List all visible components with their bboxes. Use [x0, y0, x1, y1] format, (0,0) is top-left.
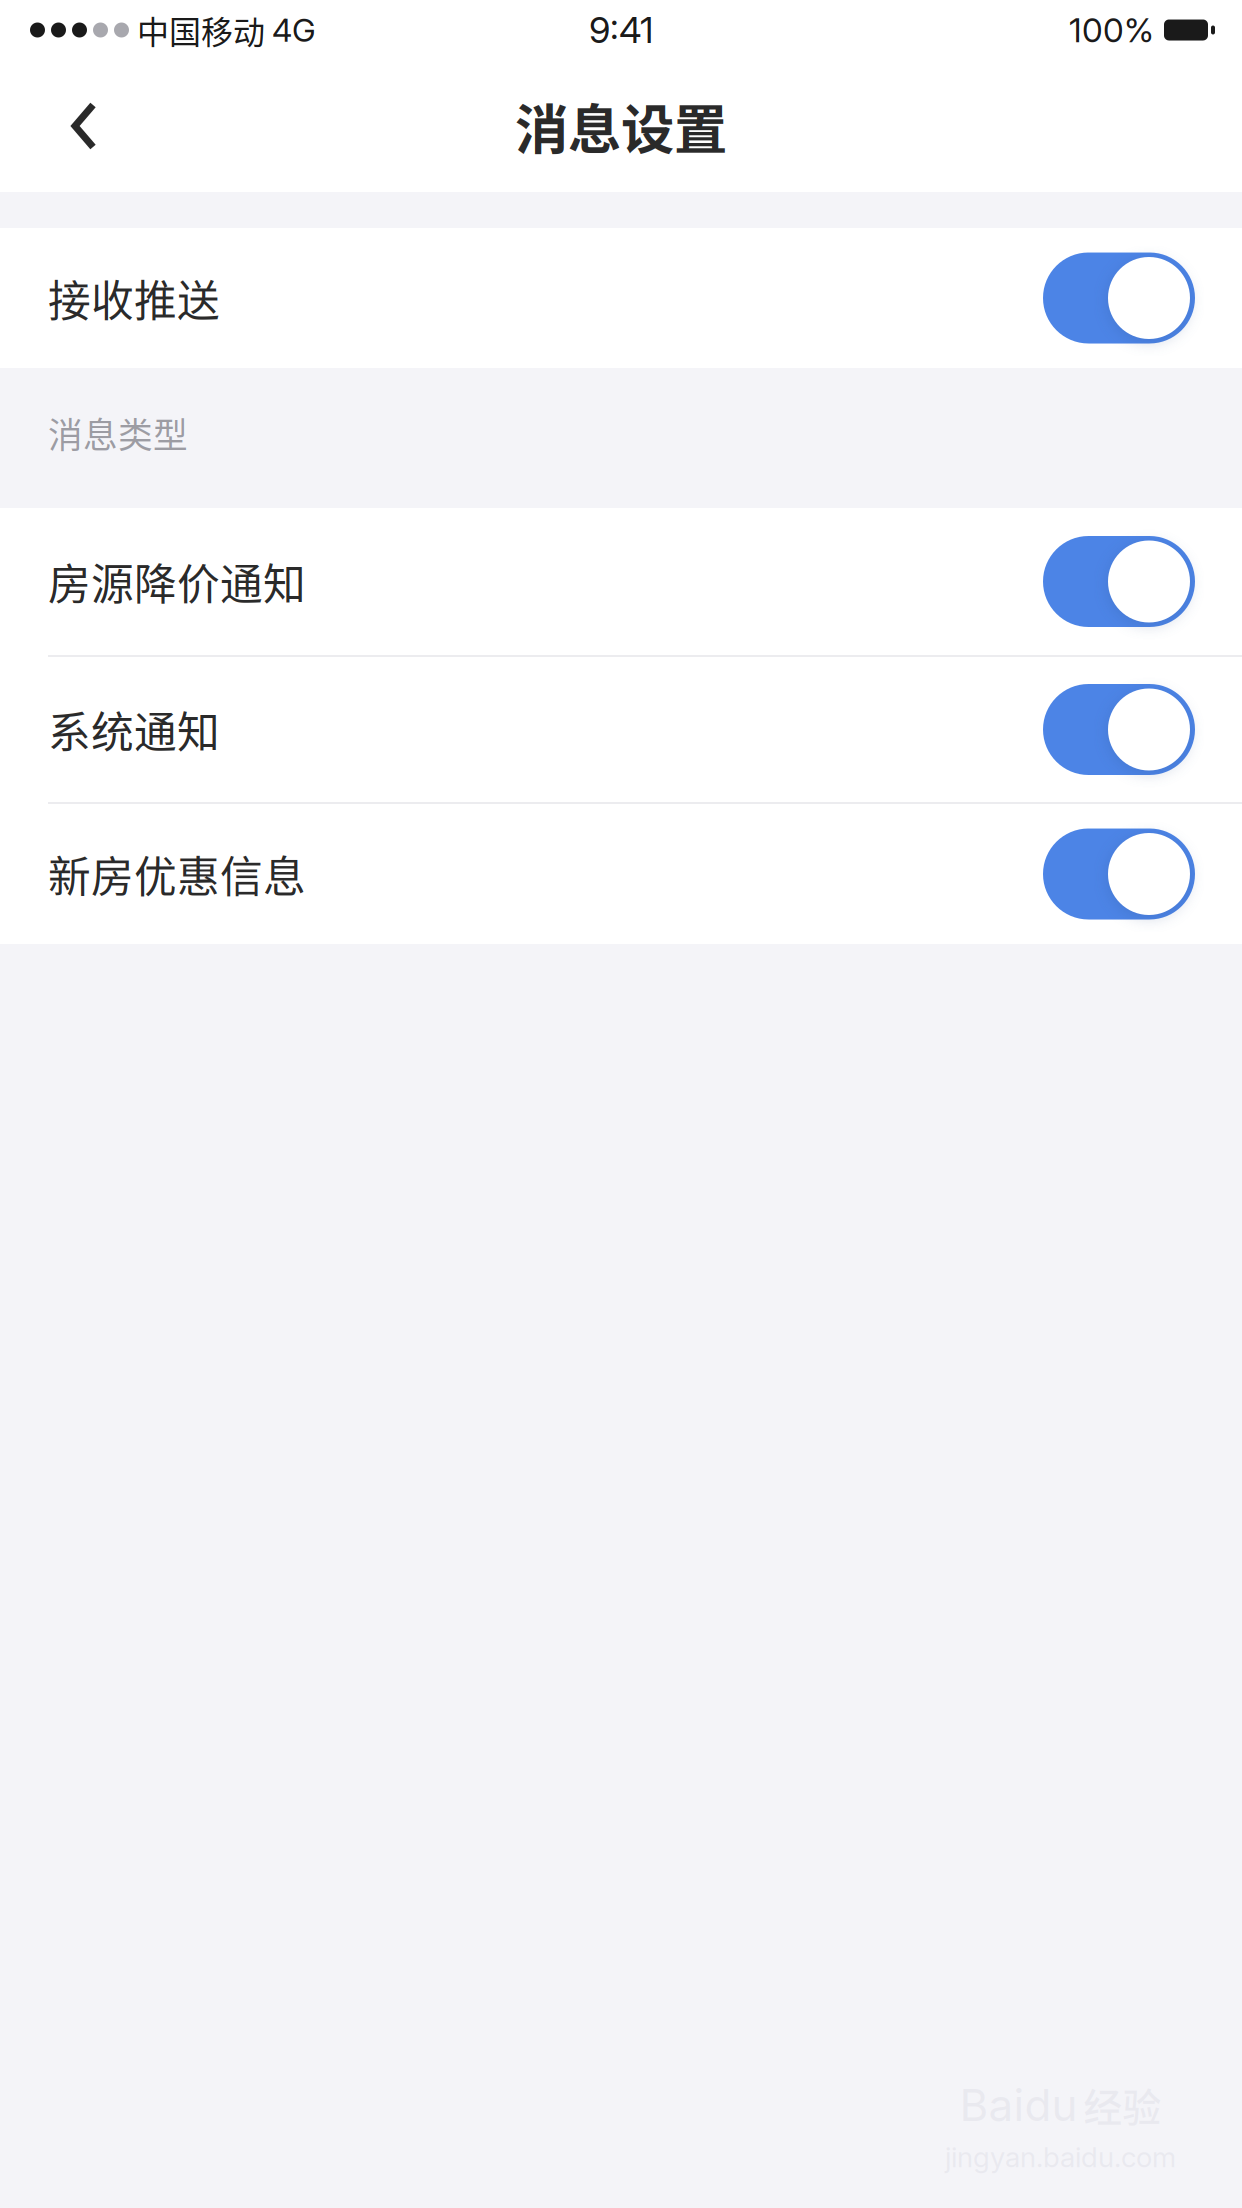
- staticText: 消息设置: [515, 87, 727, 165]
- staticText: 房源降价通知: [48, 551, 306, 612]
- staticText: 100%: [1069, 10, 1154, 50]
- staticText: 系统通知: [48, 699, 220, 760]
- button[interactable]: 新房优惠信息: [0, 804, 1242, 944]
- staticText: 中国移动: [137, 7, 265, 53]
- staticText: Baidu: [959, 2078, 1077, 2132]
- staticText: 4G: [272, 11, 316, 49]
- button[interactable]: 返回: [0, 60, 170, 192]
- staticText: jingyan.baidu.com: [945, 2140, 1176, 2174]
- button[interactable]: 系统通知: [0, 657, 1242, 802]
- staticText: 接收推送: [48, 267, 220, 329]
- button[interactable]: 房源降价通知: [0, 508, 1242, 655]
- staticText: 经验: [1083, 2077, 1161, 2133]
- button[interactable]: 接收推送: [0, 228, 1242, 368]
- staticText: 消息类型: [48, 408, 188, 458]
- staticText: 9:41: [589, 8, 653, 52]
- staticText: 新房优惠信息: [48, 843, 306, 905]
